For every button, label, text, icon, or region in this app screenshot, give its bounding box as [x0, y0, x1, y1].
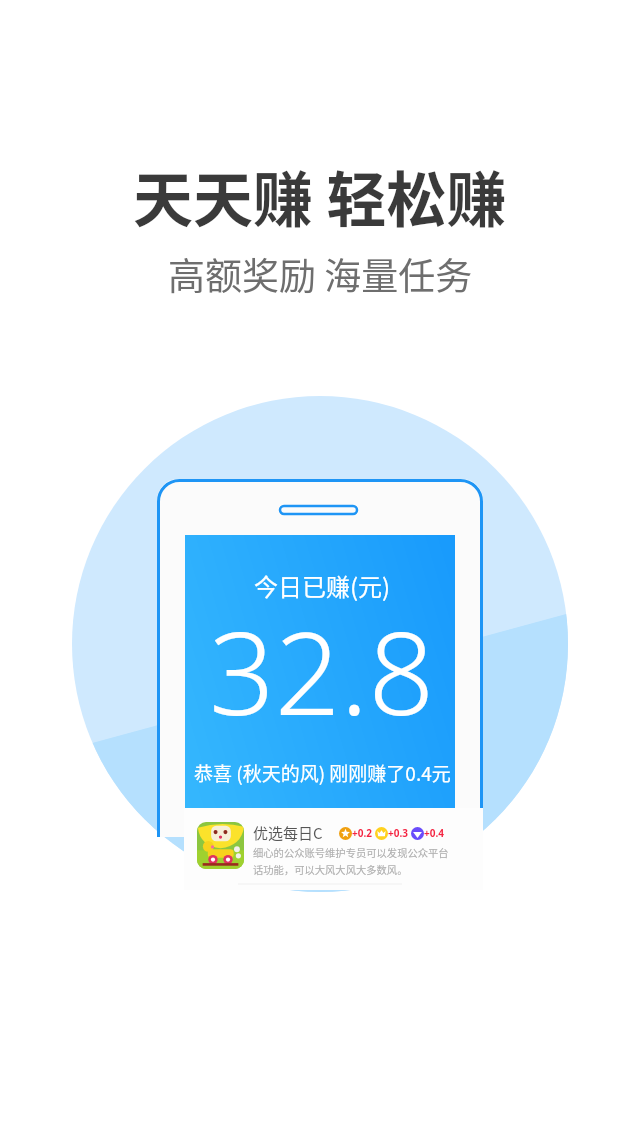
- staticText: 今日已赚(元): [254, 568, 391, 603]
- button[interactable]: 优选每日C: [184, 808, 483, 890]
- other: reward: [339, 827, 352, 840]
- staticText: +0.2: [352, 826, 372, 840]
- other: reward: [375, 827, 388, 840]
- staticText: 细心的公众账号维护专员可以发现公众平台 话功能，可以大风大风大多数风。: [253, 845, 449, 877]
- staticText: +0.4: [424, 826, 444, 840]
- other: reward: [411, 827, 424, 840]
- staticText: 恭喜 (秋天的风) 刚刚赚了0.4元: [194, 759, 451, 787]
- staticText: +0.3: [388, 826, 408, 840]
- staticText: 高额奖励 海量任务: [168, 247, 473, 301]
- staticText: 天天赚 轻松赚: [133, 152, 507, 239]
- staticText: 32.8: [209, 592, 435, 749]
- staticText: 优选每日C: [253, 822, 323, 844]
